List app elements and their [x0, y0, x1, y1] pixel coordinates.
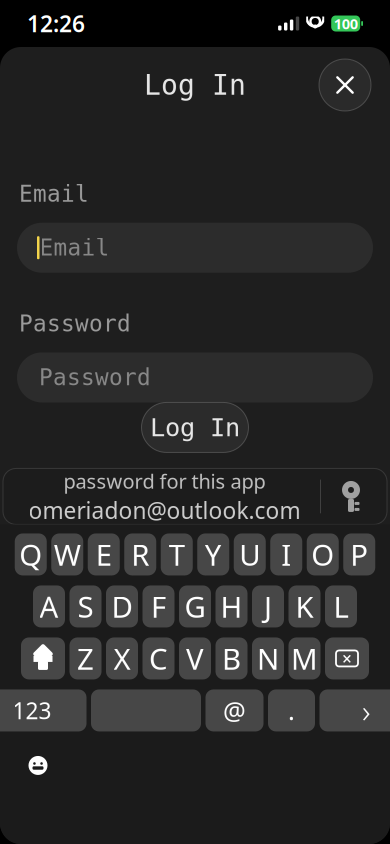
staticText: D — [111, 587, 132, 626]
staticText: × — [342, 647, 352, 670]
staticText: C — [149, 639, 168, 678]
button[interactable]: C — [142, 637, 174, 679]
button[interactable]: L — [325, 585, 357, 627]
button[interactable]: X — [106, 637, 138, 679]
button[interactable]: G — [179, 585, 211, 627]
button[interactable]: D — [106, 585, 138, 627]
button[interactable]: I — [270, 533, 302, 575]
staticText: V — [186, 639, 204, 678]
staticText: K — [295, 587, 313, 626]
staticText: L — [333, 587, 348, 626]
staticText: I — [281, 535, 291, 574]
button[interactable]: K — [288, 585, 320, 627]
staticText: 123 — [12, 695, 51, 725]
button[interactable]: 123 — [0, 689, 86, 731]
staticText: W — [54, 535, 81, 574]
staticText: J — [264, 587, 272, 626]
button[interactable]: E — [88, 533, 120, 575]
button[interactable]: Q — [15, 533, 47, 575]
staticText: . — [288, 694, 295, 727]
staticText: password for this app — [63, 468, 265, 494]
button[interactable]: P — [343, 533, 375, 575]
staticText: U — [239, 535, 260, 574]
button[interactable]: Close — [319, 59, 371, 111]
staticText: Log In — [150, 413, 240, 442]
staticText: omeriadon@outlook.com — [28, 495, 300, 525]
button[interactable]: J — [252, 585, 284, 627]
staticText: H — [220, 587, 242, 626]
button[interactable]: Go — [319, 689, 390, 731]
staticText: R — [131, 535, 149, 574]
staticText: 12:26 — [27, 8, 85, 38]
button[interactable]: Use saved password for omeriadon@outlook… — [0, 468, 390, 524]
button[interactable]: Log In — [141, 402, 248, 452]
staticText: E — [96, 535, 112, 574]
staticText: N — [257, 639, 279, 678]
button[interactable]: Delete — [325, 637, 369, 679]
button[interactable]: F — [142, 585, 174, 627]
staticText: › — [362, 689, 370, 732]
staticText: M — [291, 639, 318, 678]
button[interactable]: Z — [69, 637, 101, 679]
staticText: P — [350, 535, 368, 574]
staticText: Log In — [144, 69, 246, 101]
staticText: A — [39, 587, 58, 626]
button[interactable]: W — [51, 533, 83, 575]
staticText: @ — [223, 694, 246, 727]
button[interactable]: M — [288, 637, 320, 679]
button[interactable]: U — [234, 533, 266, 575]
button[interactable]: Shift — [21, 637, 65, 679]
staticText: Y — [205, 535, 222, 574]
button[interactable]: B — [215, 637, 247, 679]
staticText: T — [169, 535, 185, 574]
staticText: X — [113, 639, 130, 678]
button[interactable]: T — [161, 533, 193, 575]
staticText: Z — [77, 639, 94, 678]
button[interactable]: Y — [197, 533, 229, 575]
staticText: O — [311, 535, 334, 574]
button[interactable]: R — [124, 533, 156, 575]
staticText: G — [184, 587, 205, 626]
button[interactable]: N — [252, 637, 284, 679]
staticText: S — [77, 587, 93, 626]
staticText: Email — [39, 235, 109, 261]
button[interactable]: V — [179, 637, 211, 679]
button[interactable]: . — [268, 689, 315, 731]
button[interactable]: O — [307, 533, 339, 575]
button[interactable]: S — [69, 585, 101, 627]
button[interactable]: @ — [205, 689, 263, 731]
button[interactable]: A — [33, 585, 65, 627]
staticText: F — [151, 587, 166, 626]
staticText: 100 — [334, 14, 358, 33]
staticText: Password — [39, 365, 151, 390]
staticText: Email — [19, 181, 89, 207]
staticText: Password — [19, 311, 131, 336]
staticText: B — [222, 639, 241, 678]
button[interactable]: Emoji — [18, 745, 58, 785]
staticText: Q — [19, 535, 42, 574]
button[interactable]: Space — [91, 689, 201, 731]
button[interactable]: H — [215, 585, 247, 627]
